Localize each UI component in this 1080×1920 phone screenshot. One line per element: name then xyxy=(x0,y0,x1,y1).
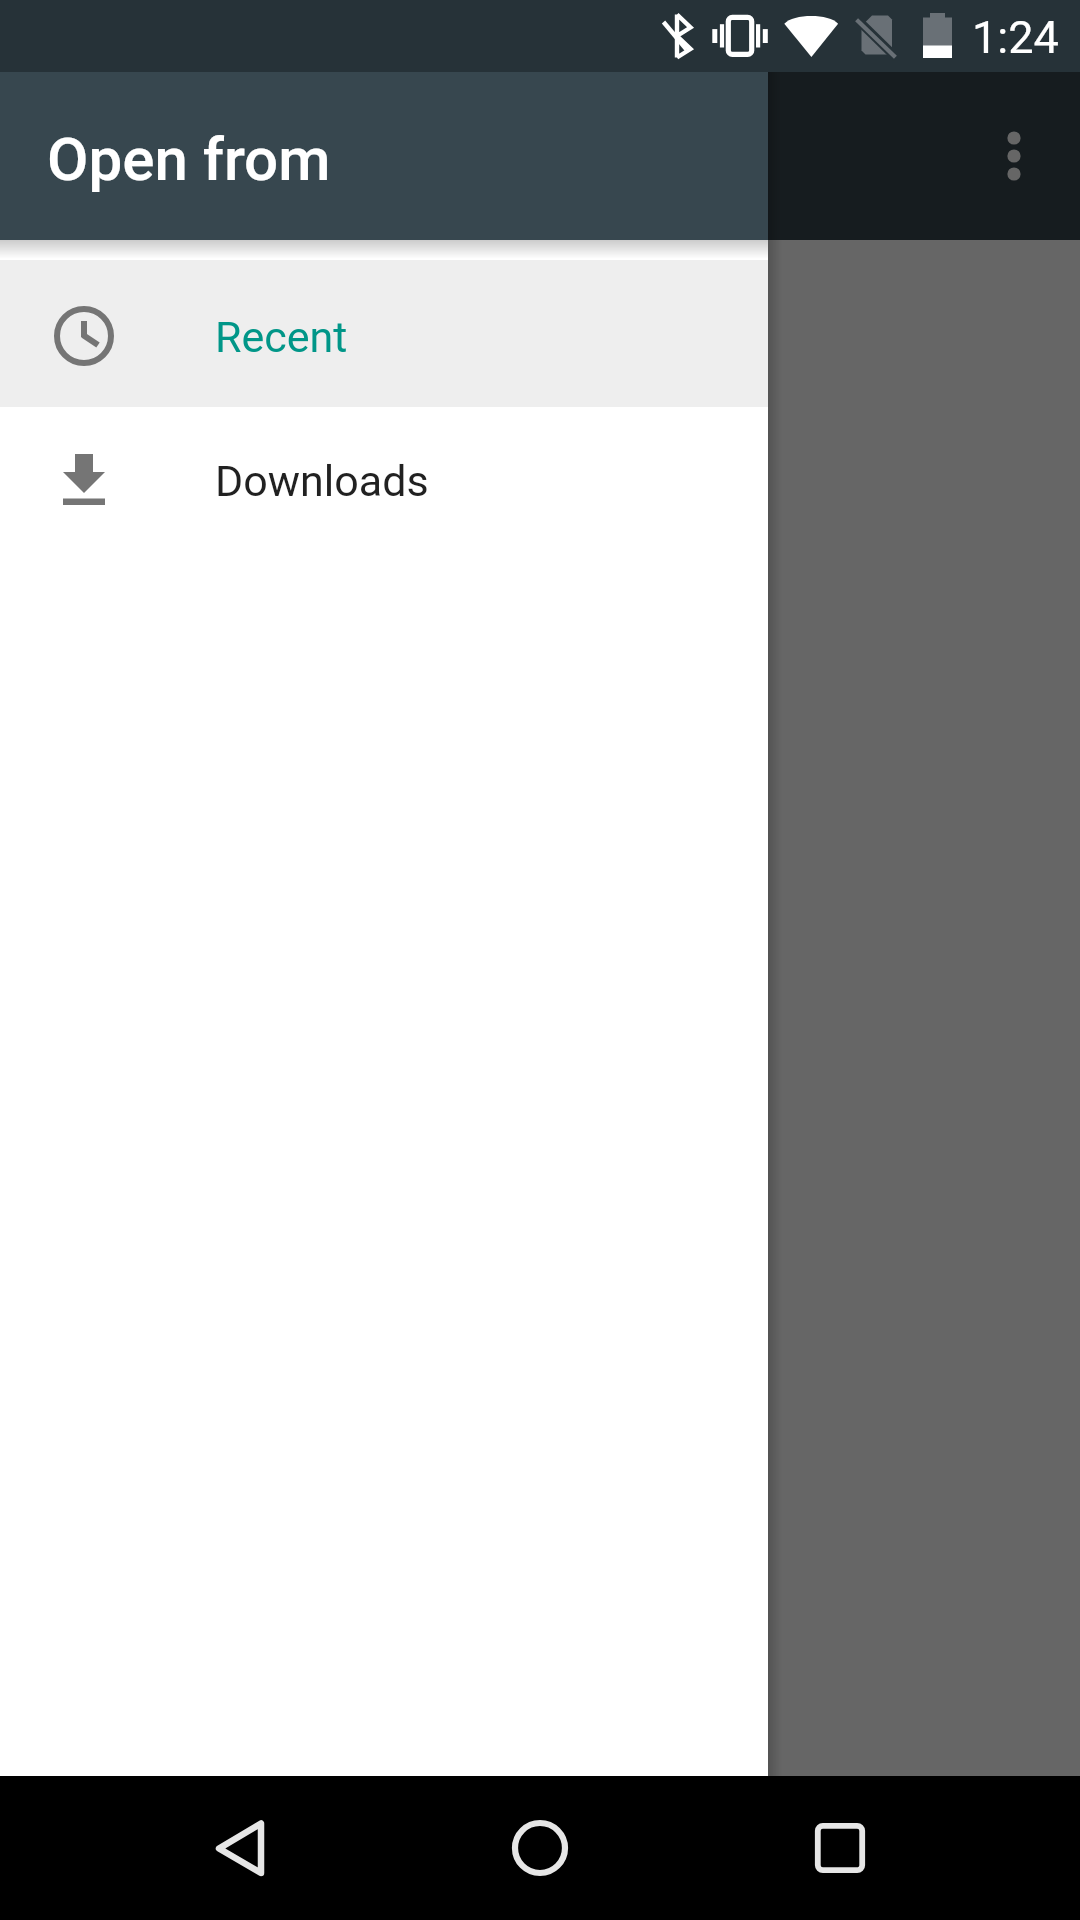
staticText: Open from xyxy=(47,124,331,194)
button[interactable]: Recent apps xyxy=(768,1776,912,1920)
button[interactable]: Recent xyxy=(0,260,768,407)
staticText: Downloads xyxy=(215,456,429,506)
button[interactable]: Downloads xyxy=(0,407,768,554)
button[interactable]: Back xyxy=(168,1776,312,1920)
staticText: 1:24 xyxy=(972,11,1059,64)
button[interactable]: Home xyxy=(468,1776,612,1920)
button[interactable]: More options xyxy=(936,72,1080,240)
staticText: Recent xyxy=(215,312,348,362)
button[interactable]: Close navigation drawer xyxy=(0,72,1080,1920)
